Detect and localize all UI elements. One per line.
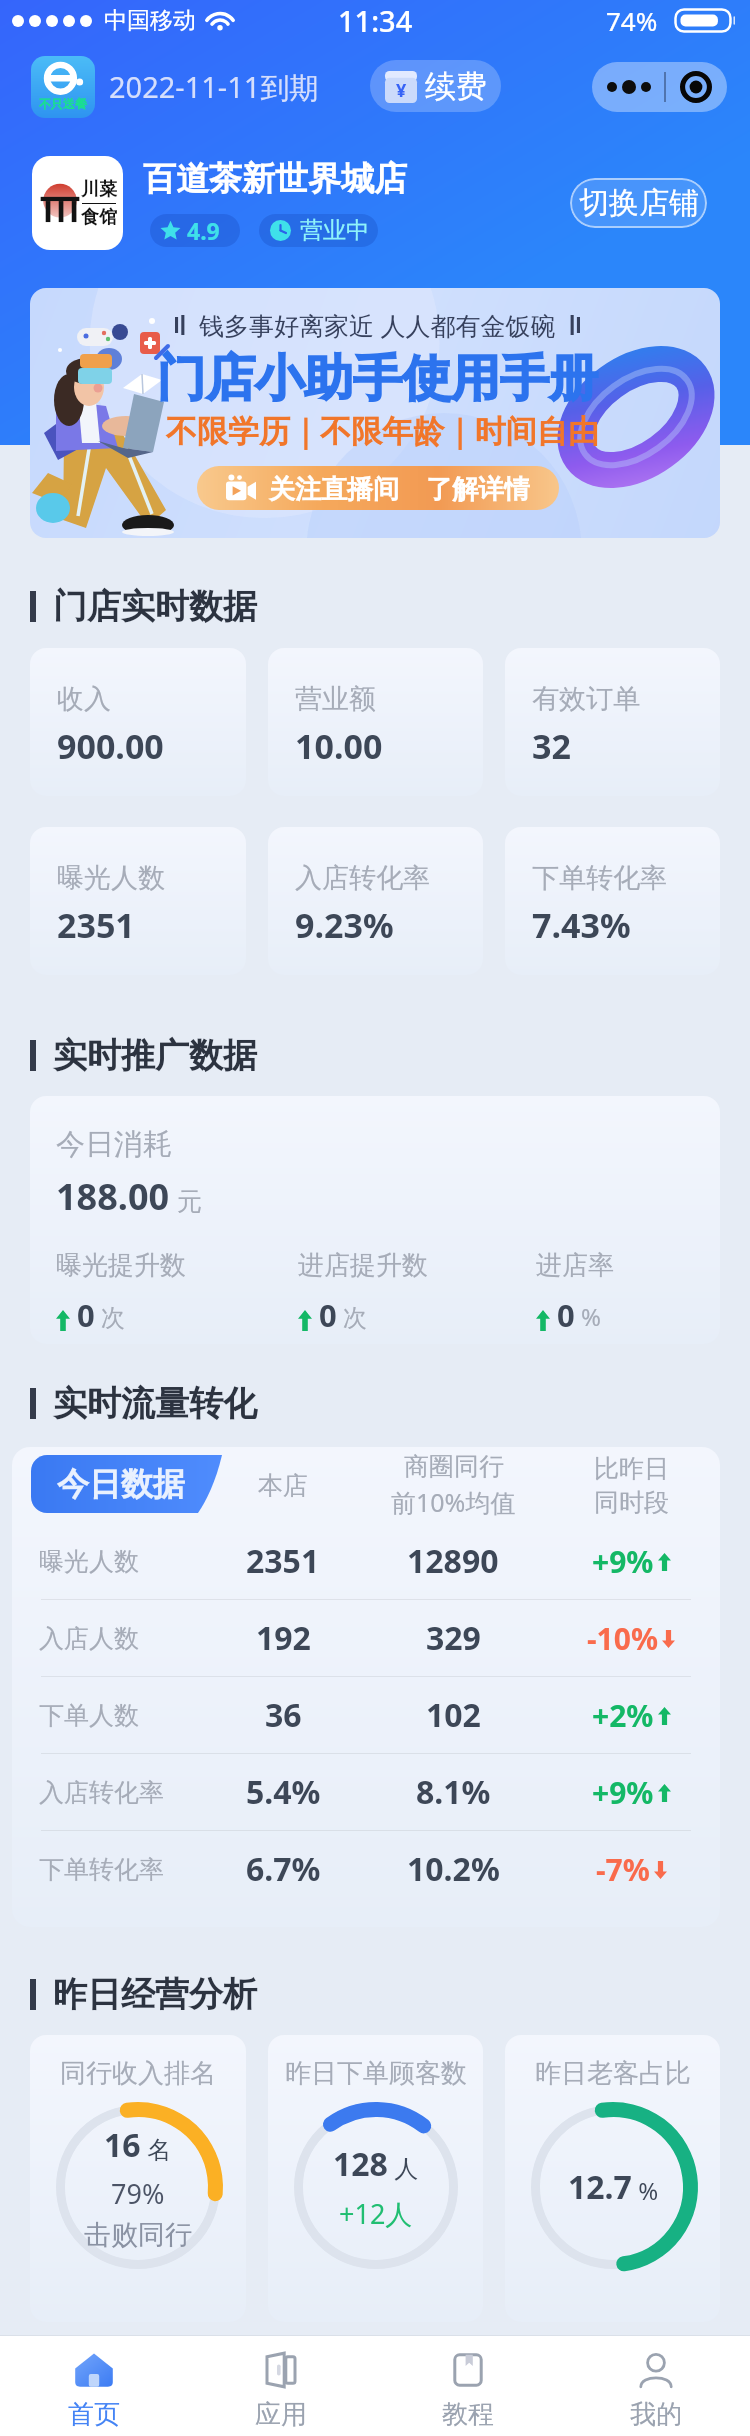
staticText: 曝光人数 — [39, 1546, 139, 1577]
staticText: 188.00 — [56, 1172, 170, 1221]
staticText: 名 — [141, 2132, 172, 2165]
button[interactable]: 切换店铺 — [570, 178, 707, 228]
button[interactable]: 昨日下单顾客数 — [268, 2035, 483, 2322]
staticText: 商圈同行 — [404, 1451, 504, 1482]
staticText: 79% — [111, 2175, 165, 2212]
staticText: ¥ — [396, 78, 407, 103]
button[interactable]: App logo — [31, 56, 95, 118]
staticText: 今日数据 — [57, 1464, 185, 1504]
staticText: 12.7 — [568, 2165, 632, 2209]
button[interactable]: 今日数据 — [31, 1455, 222, 1513]
staticText: 4.9 — [187, 215, 220, 246]
staticText: 应用 — [255, 2398, 307, 2431]
staticText: 入店转化率 — [39, 1777, 164, 1808]
button[interactable]: 下单转化率 — [505, 827, 720, 975]
staticText: 比昨日 — [594, 1453, 669, 1484]
staticText: +2% — [592, 1695, 654, 1736]
staticText: -7% — [596, 1849, 650, 1890]
staticText: +12人 — [339, 2195, 413, 2232]
staticText: 次 — [343, 1303, 367, 1333]
staticText: 教程 — [442, 2398, 494, 2431]
staticText: 首页 — [68, 2398, 120, 2431]
staticText: +9% — [592, 1541, 654, 1582]
staticText: 续费 — [425, 67, 487, 106]
staticText: 2351 — [57, 902, 135, 948]
staticText: 收入 — [57, 682, 111, 716]
button[interactable]: 我的 — [562, 2336, 750, 2436]
staticText: 门店实时数据 — [53, 585, 257, 628]
staticText: 2351 — [246, 1539, 320, 1583]
staticText: 同行收入排名 — [60, 2057, 216, 2090]
staticText: +9% — [592, 1772, 654, 1813]
staticText: 人 — [388, 2151, 419, 2184]
staticText: 百道茶新世界城店 — [143, 158, 407, 200]
staticText: 关注直播间 了解详情 — [269, 470, 531, 506]
staticText: 下单转化率 — [39, 1854, 164, 1885]
staticText: 营业中 — [300, 216, 369, 245]
button[interactable]: More options — [592, 62, 727, 112]
staticText: 我的 — [630, 2398, 682, 2431]
staticText: 32 — [532, 723, 571, 769]
button[interactable]: 教程 — [374, 2336, 562, 2436]
staticText: 192 — [256, 1616, 311, 1660]
staticText: % — [581, 1300, 601, 1333]
button[interactable]: 曝光人数 — [30, 827, 246, 975]
staticText: 10.00 — [295, 723, 383, 769]
staticText: 营业额 — [295, 682, 376, 716]
staticText: 元 — [177, 1186, 202, 1217]
staticText: 9.23% — [295, 902, 394, 948]
staticText: 同时段 — [594, 1487, 669, 1518]
button[interactable]: 入店转化率 — [268, 827, 483, 975]
staticText: 切换店铺 — [579, 184, 699, 222]
staticText: -10% — [587, 1618, 658, 1659]
staticText: 前10%均值 — [391, 1485, 516, 1519]
staticText: 329 — [426, 1616, 481, 1660]
staticText: 16 — [104, 2123, 141, 2167]
button[interactable]: 应用 — [187, 2336, 374, 2436]
staticText: 6.7% — [246, 1847, 321, 1891]
staticText: 102 — [426, 1693, 481, 1737]
staticText: 5.4% — [246, 1770, 321, 1814]
button[interactable]: 首页 — [0, 2336, 187, 2436]
staticText: 击败同行 — [84, 2218, 192, 2252]
button[interactable]: ¥ — [370, 60, 501, 112]
button[interactable]: 钱多事好离家近 人人都有金饭碗 — [30, 288, 720, 538]
staticText: 昨日经营分析 — [53, 1973, 257, 2016]
staticText: 128 — [333, 2142, 388, 2186]
staticText: 进店率 — [536, 1249, 614, 1282]
staticText: 进店提升数 — [298, 1249, 428, 1282]
button[interactable]: 同行收入排名 — [30, 2035, 246, 2322]
staticText: 曝光提升数 — [56, 1249, 186, 1282]
staticText: 下单人数 — [39, 1700, 139, 1731]
staticText: 入店人数 — [39, 1623, 139, 1654]
button[interactable]: 昨日老客占比 — [505, 2035, 720, 2322]
staticText: 门店小助手使用手册 — [157, 348, 598, 410]
staticText: 入店转化率 — [295, 861, 430, 895]
staticText: 12890 — [407, 1539, 499, 1583]
staticText: 钱多事好离家近 人人都有金饭碗 — [199, 308, 556, 342]
staticText: 下单转化率 — [532, 861, 667, 895]
staticText: 本店 — [258, 1470, 308, 1501]
button[interactable]: 今日消耗 — [30, 1096, 720, 1344]
staticText: 昨日老客占比 — [535, 2057, 691, 2090]
staticText: 实时流量转化 — [53, 1382, 257, 1425]
staticText: % — [632, 2174, 659, 2207]
staticText: 10.2% — [407, 1847, 500, 1891]
button[interactable]: 有效订单 — [505, 648, 720, 796]
staticText: 2022-11-11到期 — [109, 67, 319, 107]
staticText: 36 — [265, 1693, 302, 1737]
button[interactable]: 收入 — [30, 648, 246, 796]
staticText: 次 — [101, 1303, 125, 1333]
staticText: 川菜 — [81, 178, 117, 201]
staticText: 昨日下单顾客数 — [285, 2057, 467, 2090]
staticText: 7.43% — [532, 902, 631, 948]
staticText: 食馆 — [81, 206, 117, 229]
button[interactable]: 营业额 — [268, 648, 483, 796]
staticText: 11:34 — [338, 1, 413, 40]
staticText: 实时推广数据 — [53, 1034, 257, 1077]
button[interactable]: 关注直播间 了解详情 — [197, 466, 559, 510]
staticText: 今日消耗 — [56, 1126, 172, 1163]
staticText: 900.00 — [57, 723, 164, 769]
staticText: 0 — [319, 1294, 337, 1336]
staticText: 74% — [606, 3, 658, 38]
